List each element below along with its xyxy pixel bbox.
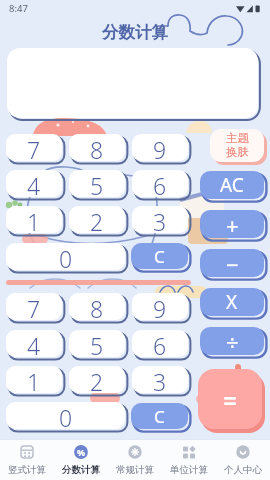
button[interactable]: 5	[69, 170, 125, 197]
staticText: 单位计算	[170, 464, 208, 476]
staticText: AC	[220, 172, 244, 198]
button[interactable]: AC	[200, 171, 264, 199]
staticText: 1	[27, 366, 41, 393]
button[interactable]: 0	[6, 243, 125, 270]
button[interactable]: 6	[132, 330, 188, 357]
button[interactable]: 7	[6, 134, 62, 161]
button[interactable]: C	[131, 403, 188, 429]
staticText: 6	[153, 330, 167, 357]
button[interactable]: 9	[132, 134, 188, 161]
staticText: %	[77, 446, 86, 458]
button[interactable]: 单位计算	[162, 445, 216, 476]
button[interactable]: 0	[6, 402, 125, 429]
button[interactable]	[7, 48, 258, 118]
staticText: X	[226, 289, 238, 315]
staticText: 8	[90, 293, 104, 320]
staticText: 0	[59, 402, 73, 429]
button[interactable]: 2	[69, 206, 125, 233]
staticText: 分数计算	[62, 464, 100, 476]
staticText: 0	[59, 243, 73, 270]
staticText: 3	[153, 366, 167, 393]
staticText: 6	[153, 170, 167, 197]
staticText: 4	[27, 330, 41, 357]
button[interactable]: 2	[69, 366, 125, 393]
button[interactable]: 4	[6, 170, 62, 197]
button[interactable]: ÷	[200, 327, 264, 355]
staticText: C	[154, 405, 165, 428]
button[interactable]: 7	[6, 293, 62, 320]
button[interactable]: %	[54, 445, 108, 476]
staticText: 9	[153, 134, 167, 161]
staticText: C	[154, 245, 165, 268]
staticText: 1	[27, 206, 41, 233]
staticText: ÷	[226, 327, 239, 355]
button[interactable]: 个人中心	[216, 445, 270, 476]
staticText: 9	[153, 293, 167, 320]
button[interactable]: 3	[132, 366, 188, 393]
button[interactable]: X	[200, 288, 264, 316]
button[interactable]: 主题 换肤	[210, 129, 264, 162]
staticText: 5	[90, 330, 104, 357]
staticText: 2	[90, 206, 104, 233]
staticText: 5	[90, 170, 104, 197]
staticText: 分数计算	[102, 22, 168, 43]
button[interactable]: +	[200, 210, 264, 238]
staticText: −	[226, 249, 239, 277]
staticText: 主题 换肤	[226, 131, 249, 160]
button[interactable]: 4	[6, 330, 62, 357]
button[interactable]: 6	[132, 170, 188, 197]
staticText: 个人中心	[224, 464, 262, 476]
staticText: 8:47	[9, 2, 28, 15]
button[interactable]: 竖式计算	[0, 445, 54, 476]
staticText: 3	[153, 206, 167, 233]
button[interactable]: 5	[69, 330, 125, 357]
button[interactable]: C	[131, 243, 188, 269]
button[interactable]: 3	[132, 206, 188, 233]
button[interactable]: 8	[69, 134, 125, 161]
button[interactable]: 8	[69, 293, 125, 320]
button[interactable]: 常规计算	[108, 445, 162, 476]
button[interactable]: 1	[6, 366, 62, 393]
staticText: 8	[90, 134, 104, 161]
button[interactable]: 9	[132, 293, 188, 320]
staticText: 4	[27, 170, 41, 197]
button[interactable]: −	[200, 249, 264, 277]
button[interactable]: 1	[6, 206, 62, 233]
button[interactable]: 等于	[198, 369, 262, 429]
staticText: 7	[27, 134, 41, 161]
staticText: 2	[90, 366, 104, 393]
staticText: 竖式计算	[8, 464, 46, 476]
staticText: 常规计算	[116, 464, 154, 476]
staticText: +	[226, 210, 239, 238]
staticText: 7	[27, 293, 41, 320]
